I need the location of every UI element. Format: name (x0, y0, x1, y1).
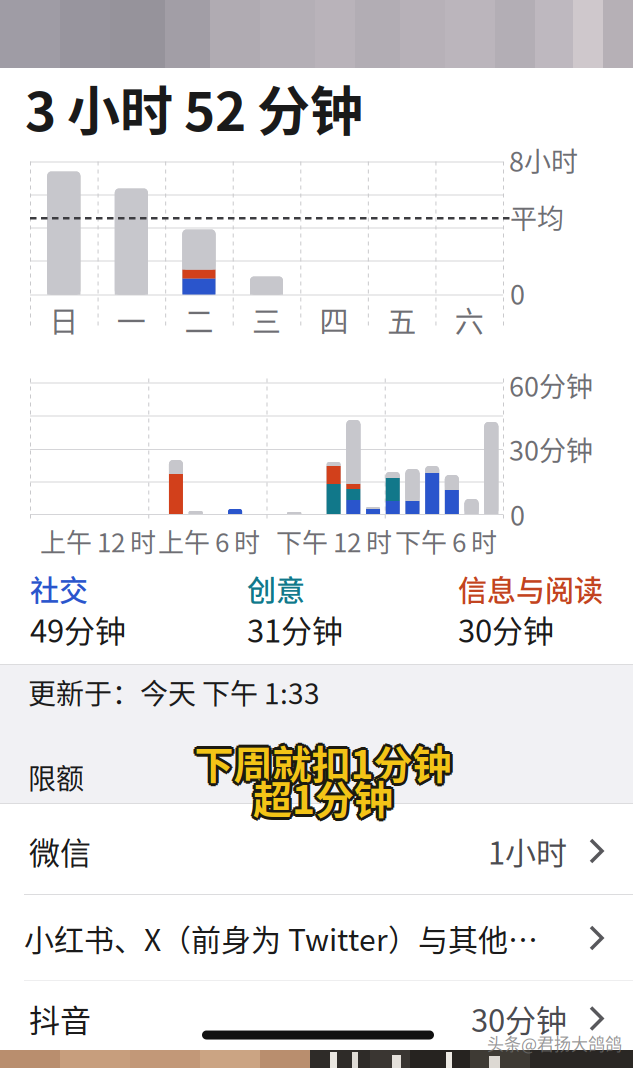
staticText: 下周就扣1分钟 (194, 737, 451, 793)
staticText: 下周就扣1分钟 (197, 734, 454, 790)
staticText: 二 (184, 299, 213, 341)
staticText: 超1分钟 (255, 767, 395, 823)
staticText: 社交 (30, 568, 88, 610)
staticText: 超1分钟 (251, 771, 391, 827)
staticText: 超1分钟 (253, 769, 393, 825)
staticText: 30分钟 (458, 607, 554, 651)
staticText: 下周就扣1分钟 (196, 736, 453, 792)
staticText: 60分钟 (509, 365, 593, 405)
staticText: 四 (320, 299, 349, 341)
staticText: 3 小时 52 分钟 (25, 70, 363, 146)
staticText: 下午 6 时 (395, 522, 497, 560)
staticText: 超1分钟 (253, 772, 393, 828)
staticText: 8小时 (509, 140, 578, 180)
button[interactable]: 小红书、X（前身为 Twitter）与其他… (0, 895, 633, 981)
staticText: 超1分钟 (251, 767, 391, 823)
staticText: 小红书、X（前身为 Twitter）与其他… (24, 916, 538, 960)
staticText: 信息与阅读 (458, 568, 603, 610)
staticText: 49分钟 (30, 607, 126, 651)
staticText: 0 (510, 494, 525, 534)
staticText: 平均 (510, 197, 564, 237)
staticText: 微信 (29, 829, 91, 873)
staticText: 上午 6 时 (158, 522, 260, 560)
button[interactable]: 抖音 (0, 980, 633, 1049)
staticText: 超1分钟 (253, 766, 393, 822)
staticText: 超1分钟 (256, 769, 396, 825)
staticText: 抖音 (29, 996, 91, 1041)
staticText: 超1分钟 (255, 771, 395, 827)
staticText: 头条@君扬大鸽鸽 (487, 1031, 622, 1055)
staticText: 超1分钟 (250, 769, 390, 825)
staticText: 一 (117, 299, 146, 341)
staticText: 下周就扣1分钟 (192, 732, 449, 788)
staticText: 下午 12 时 (276, 522, 392, 560)
staticText: 限额 (28, 757, 84, 797)
staticText: 下周就扣1分钟 (191, 734, 448, 790)
staticText: 下周就扣1分钟 (196, 732, 453, 788)
staticText: 日 (49, 299, 78, 341)
staticText: 更新于：今天 下午 1:33 (28, 672, 320, 712)
staticText: 1小时 (488, 829, 567, 873)
staticText: 0 (510, 273, 525, 313)
staticText: 下周就扣1分钟 (194, 731, 451, 787)
staticText: 31分钟 (247, 607, 343, 651)
staticText: 创意 (247, 568, 305, 610)
staticText: 五 (387, 299, 416, 341)
staticText: 上午 12 时 (40, 522, 156, 560)
button[interactable]: 微信 (0, 808, 633, 894)
staticText: 30分钟 (471, 996, 567, 1041)
staticText: 六 (455, 299, 484, 341)
staticText: 30分钟 (509, 429, 593, 469)
staticText: 三 (252, 299, 281, 341)
staticText: 下周就扣1分钟 (194, 734, 451, 790)
staticText: 下周就扣1分钟 (192, 736, 449, 792)
